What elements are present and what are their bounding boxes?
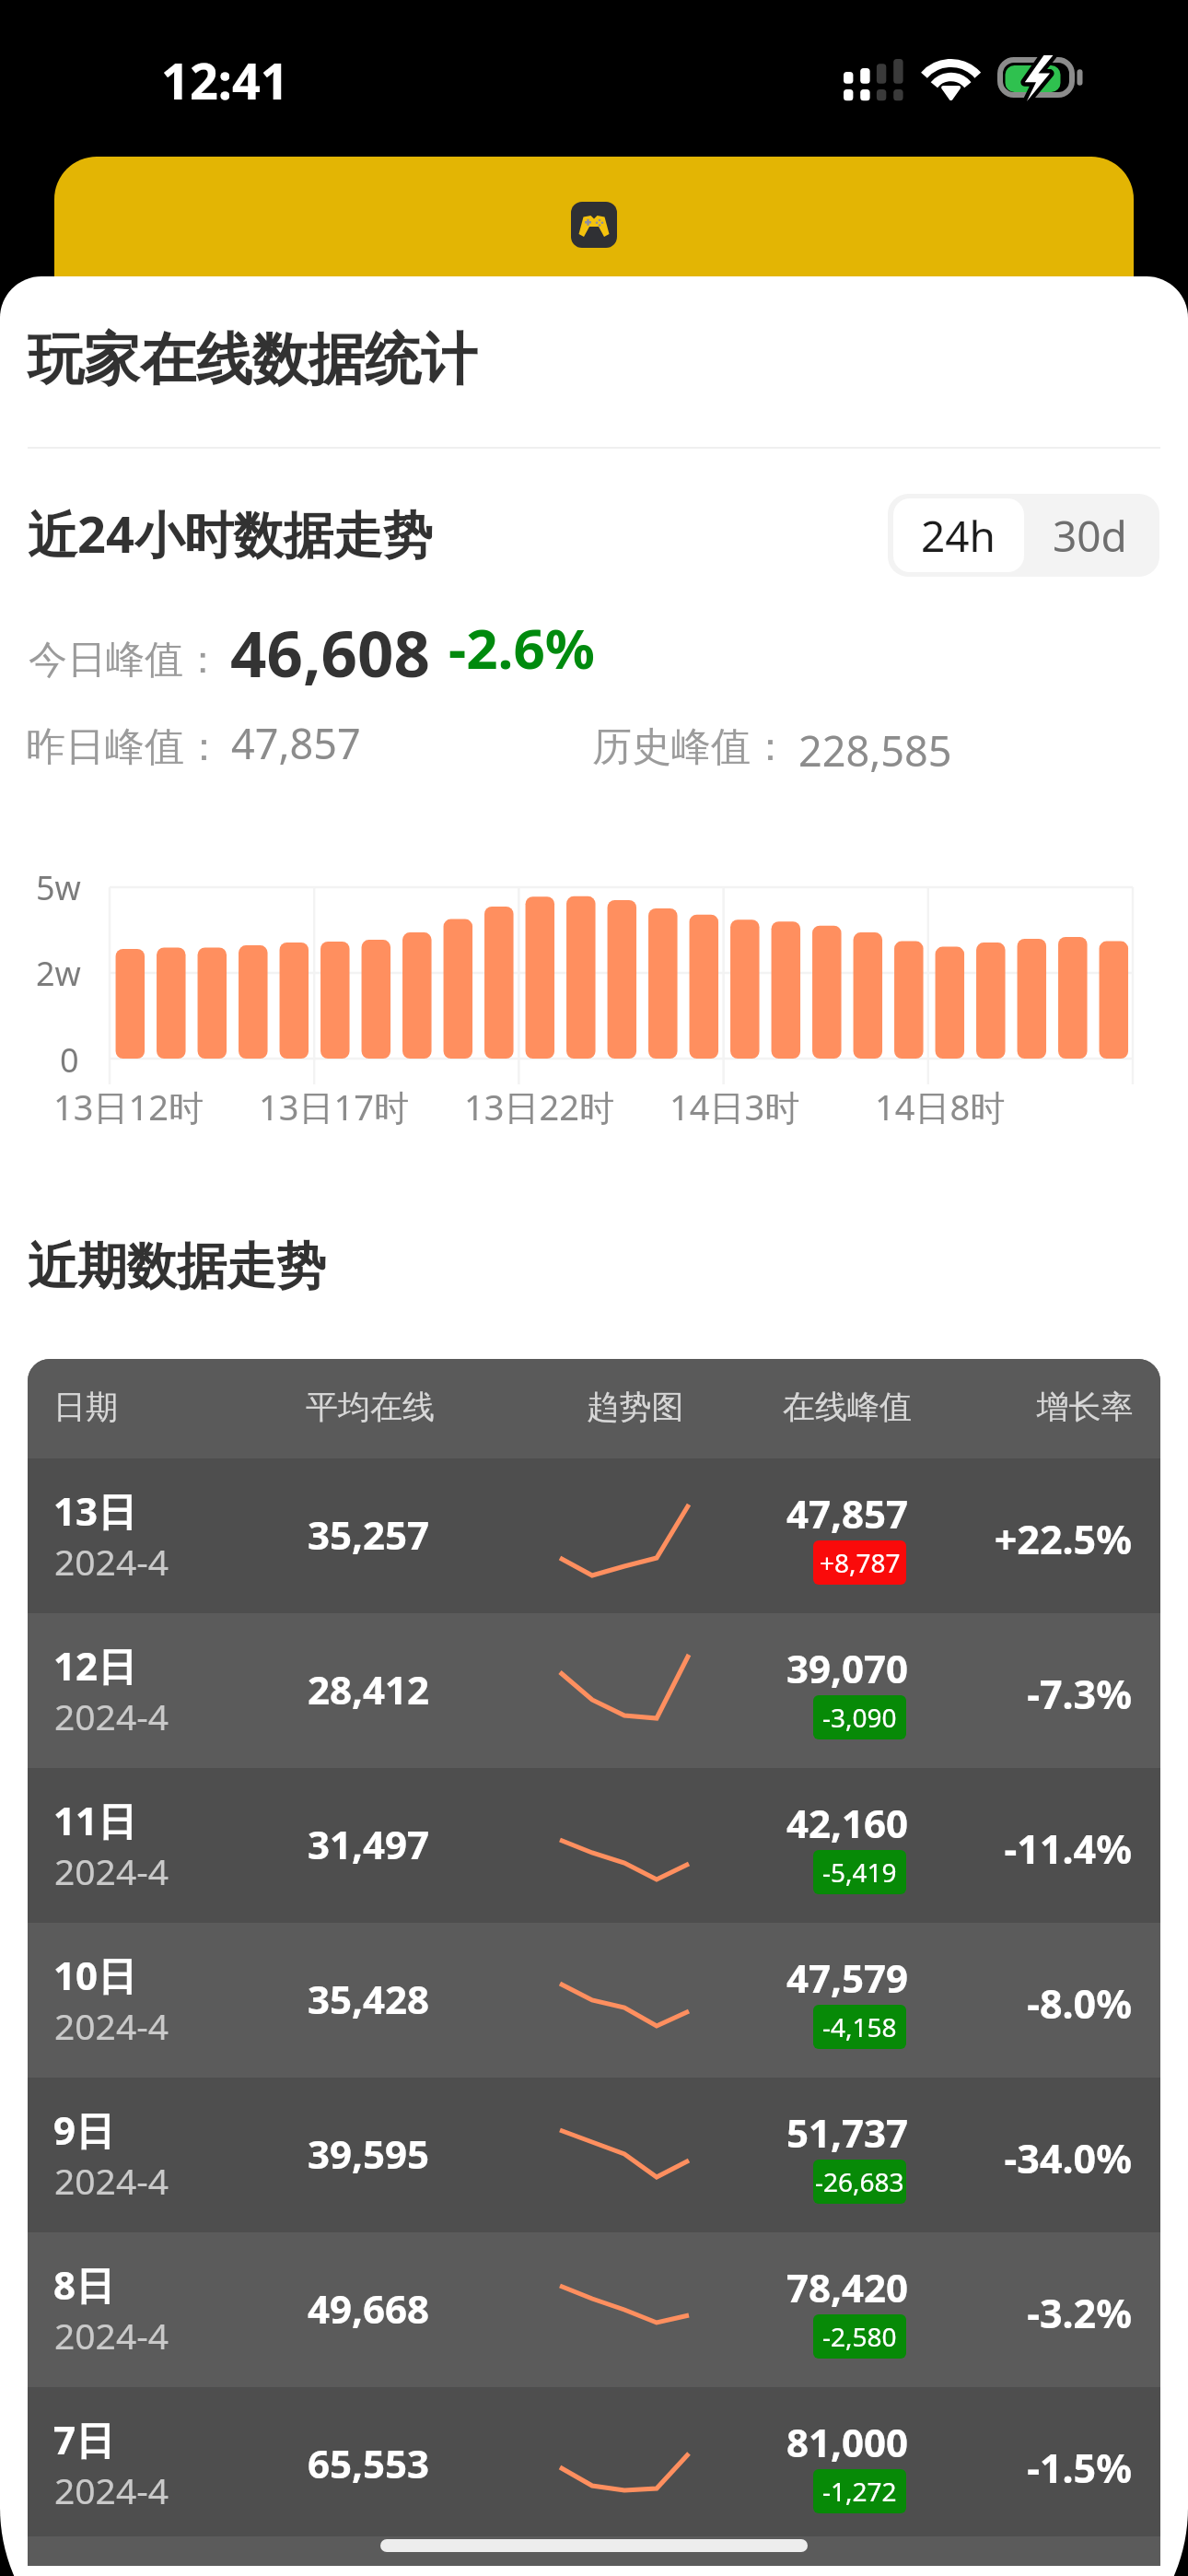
staticText: 2024-4: [54, 2465, 169, 2514]
other: Wi-Fi: [925, 59, 980, 101]
staticText: -2.6%: [448, 610, 595, 685]
staticText: 5w: [36, 865, 81, 910]
staticText: 2024-4: [54, 2311, 169, 2359]
staticText: -1,272: [822, 2474, 897, 2509]
staticText: 趋势图: [497, 1387, 774, 1427]
staticText: -5,419: [822, 1855, 897, 1890]
staticText: 13日: [53, 1484, 137, 1537]
staticText: 13日17时: [259, 1083, 409, 1130]
staticText: 玩家在线数据统计: [28, 324, 477, 395]
staticText: 28,412: [184, 1663, 553, 1715]
staticText: 31,497: [184, 1818, 553, 1870]
staticText: 2024-4: [54, 1692, 169, 1740]
staticText: 8日: [53, 2258, 115, 2311]
staticText: 近期数据走势: [28, 1235, 326, 1298]
staticText: -1.5%: [763, 2441, 1132, 2495]
button[interactable]: 13日: [28, 1458, 1160, 1613]
other: Game: [571, 202, 617, 248]
button[interactable]: 9日: [28, 2078, 1160, 2232]
button[interactable]: 30d: [1024, 498, 1155, 572]
staticText: -3,090: [822, 1700, 897, 1735]
staticText: -26,683: [815, 2164, 904, 2199]
staticText: 47,579: [663, 1951, 1031, 2004]
staticText: 49,668: [184, 2282, 553, 2335]
staticText: -7.3%: [763, 1667, 1132, 1721]
staticText: 24h: [921, 507, 996, 565]
staticText: 12:41: [161, 46, 289, 114]
staticText: -34.0%: [763, 2131, 1132, 2185]
staticText: 昨日峰值：: [26, 722, 224, 772]
staticText: +8,787: [820, 1545, 901, 1580]
staticText: 13日22时: [464, 1083, 614, 1130]
staticText: 日期: [28, 1387, 224, 1427]
staticText: -11.4%: [763, 1821, 1132, 1876]
staticText: 42,160: [663, 1797, 1031, 1849]
staticText: 30d: [1053, 507, 1127, 565]
other: Battery: [997, 57, 1086, 101]
staticText: 9日: [53, 2103, 115, 2156]
staticText: 78,420: [663, 2261, 1031, 2313]
staticText: 平均在线: [232, 1387, 508, 1427]
button[interactable]: 11日: [28, 1768, 1160, 1923]
staticText: 2024-4: [54, 2001, 169, 2050]
staticText: 在线峰值: [709, 1387, 985, 1427]
staticText: +22.5%: [763, 1512, 1132, 1566]
staticText: 2024-4: [54, 2156, 169, 2205]
staticText: 10日: [53, 1949, 137, 2001]
staticText: -2,580: [822, 2319, 897, 2354]
staticText: 47,857: [663, 1487, 1031, 1540]
staticText: 65,553: [184, 2437, 553, 2489]
staticText: 近24小时数据走势: [28, 499, 433, 568]
staticText: 39,595: [184, 2127, 553, 2180]
button[interactable]: 7日: [28, 2387, 1160, 2542]
staticText: -3.2%: [763, 2286, 1132, 2340]
staticText: 35,428: [184, 1973, 553, 2025]
staticText: 2w: [36, 951, 81, 996]
staticText: 增长率: [947, 1387, 1160, 1427]
staticText: 46,608: [230, 609, 431, 696]
button[interactable]: 24h: [893, 498, 1024, 572]
staticText: 39,070: [663, 1642, 1031, 1694]
staticText: 81,000: [663, 2416, 1031, 2468]
button[interactable]: 8日: [28, 2232, 1160, 2387]
staticText: 2024-4: [54, 1537, 169, 1586]
staticText: 12日: [53, 1639, 137, 1692]
staticText: -4,158: [822, 2009, 897, 2044]
staticText: 35,257: [184, 1508, 553, 1561]
staticText: 0: [60, 1037, 79, 1083]
staticText: 7日: [53, 2413, 115, 2465]
staticText: 历史峰值：: [592, 722, 790, 772]
button[interactable]: 12日: [28, 1613, 1160, 1768]
staticText: 47,857: [231, 715, 361, 771]
staticText: 13日12时: [53, 1083, 204, 1130]
staticText: 14日3时: [670, 1083, 800, 1130]
staticText: 11日: [53, 1794, 137, 1846]
staticText: 2024-4: [54, 1846, 169, 1895]
other: Signal: [844, 59, 904, 101]
staticText: -8.0%: [763, 1976, 1132, 2031]
button[interactable]: 10日: [28, 1923, 1160, 2078]
staticText: 51,737: [663, 2106, 1031, 2159]
staticText: 228,585: [798, 722, 952, 779]
staticText: 今日峰值：: [29, 636, 222, 685]
staticText: 14日8时: [875, 1083, 1006, 1130]
